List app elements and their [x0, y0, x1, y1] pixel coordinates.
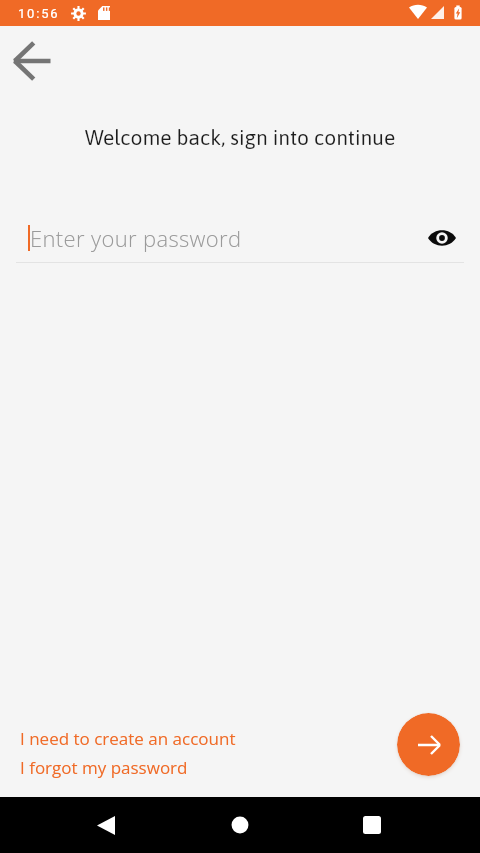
- button[interactable]: Back: [8, 37, 56, 85]
- button[interactable]: I forgot my password: [20, 756, 188, 779]
- button[interactable]: Show password: [420, 216, 464, 260]
- staticText: Enter your password: [30, 223, 242, 253]
- staticText: Welcome back, sign into continue: [0, 125, 480, 149]
- button[interactable]: Home: [216, 801, 264, 849]
- button[interactable]: Continue: [397, 713, 460, 776]
- staticText: 10:56: [18, 6, 60, 21]
- button[interactable]: Back: [82, 801, 130, 849]
- button[interactable]: Recents: [348, 801, 396, 849]
- button[interactable]: I need to create an account: [20, 727, 236, 750]
